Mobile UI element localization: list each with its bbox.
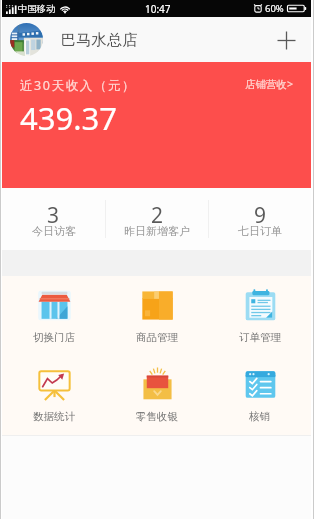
staticText: 七日订单 [238,224,282,238]
staticText: 切换门店 [33,331,75,344]
button[interactable]: 数据统计 [2,355,105,435]
button[interactable]: 切换门店 [2,276,105,355]
staticText: 10:47 [145,2,171,16]
staticText: 439.37 [20,97,117,139]
staticText: 零售收银 [136,410,178,423]
staticText: 昨日新增客户 [124,224,190,238]
staticText: 商品管理 [136,331,178,344]
staticText: 2 [151,201,164,230]
staticText: 60% [265,2,284,15]
staticText: 今日访客 [32,224,76,238]
button[interactable]: 2 [106,188,208,250]
button[interactable]: 订单管理 [208,276,311,355]
staticText: 9 [254,201,267,230]
button[interactable]: Store avatar [10,23,43,56]
button[interactable]: 店铺营收> [245,77,294,91]
button[interactable]: Add [269,23,303,57]
button[interactable]: 9 [209,188,311,250]
button[interactable]: 近30天收入（元） [2,62,311,188]
staticText: 中国移动 [18,3,56,15]
staticText: 订单管理 [239,331,281,344]
staticText: 数据统计 [33,410,75,423]
button[interactable]: 核销 [208,355,311,435]
button[interactable]: 商品管理 [105,276,208,355]
button[interactable]: 零售收银 [105,355,208,435]
staticText: 核销 [249,410,270,423]
staticText: 3 [47,201,60,230]
button[interactable]: 3 [2,188,105,250]
staticText: 近30天收入（元） [20,77,137,94]
staticText: 店铺营收> [245,77,294,91]
staticText: 巴马水总店 [61,30,138,49]
